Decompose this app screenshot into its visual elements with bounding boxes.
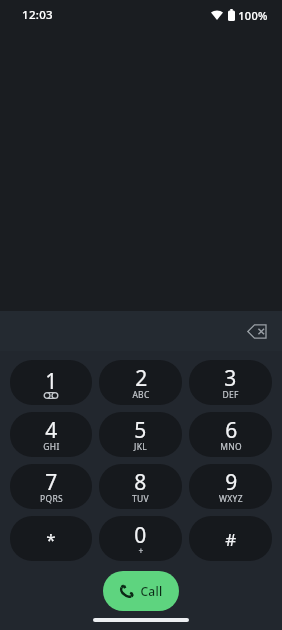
button[interactable]: 9 [189,464,272,509]
staticText: 2 [135,364,148,388]
button[interactable]: # [189,516,272,561]
button[interactable]: Call [103,571,179,611]
staticText: WXYZ [219,493,243,505]
button[interactable]: 4 [10,412,92,457]
staticText: 3 [224,364,237,388]
staticText: ABC [132,389,150,401]
staticText: # [225,528,237,550]
button[interactable]: * [10,516,92,561]
staticText: 6 [225,416,238,440]
staticText: 100% [238,8,268,23]
button[interactable]: 6 [189,412,272,457]
button[interactable]: 1 [10,360,92,405]
staticText: 12:03 [22,7,53,23]
button[interactable]: 8 [99,464,182,509]
button[interactable]: 0 [99,516,182,561]
staticText: PQRS [40,493,63,505]
staticText: Call [140,583,163,599]
staticText: * [46,528,56,550]
staticText: 8 [134,468,147,492]
button[interactable]: Backspace [240,314,274,348]
staticText: 0 [134,521,147,545]
button[interactable]: 3 [189,360,272,405]
staticText: 5 [134,416,147,440]
staticText: GHI [43,441,60,453]
button[interactable]: 7 [10,464,92,509]
staticText: JKL [134,441,147,453]
staticText: TUV [132,493,149,505]
staticText: MNO [220,441,242,453]
staticText: 9 [225,468,238,492]
staticText: + [138,545,144,557]
staticText: DEF [222,389,239,401]
button[interactable]: 5 [99,412,182,457]
staticText: 1 [45,367,58,391]
button[interactable]: 2 [99,360,182,405]
staticText: 4 [45,416,58,440]
staticText: 7 [45,468,58,492]
